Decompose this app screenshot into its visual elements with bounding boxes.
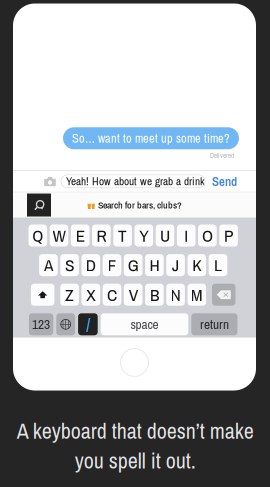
staticText: /: [86, 312, 90, 337]
staticText: Search for bars, clubs?: [98, 198, 182, 212]
button[interactable]: Delete: [212, 284, 235, 306]
button[interactable]: M: [187, 284, 206, 306]
staticText: R: [96, 224, 106, 247]
button[interactable]: O: [198, 224, 217, 246]
staticText: return: [200, 315, 229, 333]
staticText: Delivered: [210, 151, 234, 160]
staticText: O: [202, 224, 213, 247]
staticText: So… want to meet up some time?: [72, 130, 230, 146]
button[interactable]: U: [156, 224, 174, 246]
staticText: C: [107, 283, 117, 306]
button[interactable]: R: [92, 224, 111, 246]
staticText: M: [191, 283, 203, 306]
button[interactable]: Z: [60, 284, 79, 306]
button[interactable]: Switch keyboard: [56, 313, 75, 335]
button[interactable]: 123: [29, 313, 53, 335]
staticText: J: [172, 253, 179, 277]
staticText: I: [184, 224, 188, 247]
staticText: P: [224, 224, 233, 247]
button[interactable]: A: [39, 254, 58, 276]
button[interactable]: T: [113, 224, 132, 246]
staticText: 123: [32, 315, 50, 333]
button[interactable]: return: [191, 313, 237, 335]
button[interactable]: X: [81, 284, 100, 306]
button[interactable]: Q: [28, 224, 47, 246]
button[interactable]: J: [166, 254, 185, 276]
staticText: F: [107, 253, 116, 277]
staticText: V: [129, 283, 138, 306]
staticText: Z: [65, 283, 74, 306]
button[interactable]: V: [124, 284, 142, 306]
button[interactable]: Shift: [31, 284, 54, 306]
staticText: A keyboard that doesn’t make you spell i…: [16, 416, 253, 475]
button[interactable]: E: [71, 224, 89, 246]
staticText: D: [86, 253, 96, 277]
button[interactable]: Y: [134, 224, 153, 246]
staticText: L: [214, 253, 222, 277]
staticText: K: [192, 253, 201, 277]
button[interactable]: Scout search: [27, 193, 51, 216]
button[interactable]: D: [81, 254, 100, 276]
button[interactable]: K: [187, 254, 206, 276]
staticText: H: [149, 253, 159, 277]
button[interactable]: C: [103, 284, 121, 306]
button[interactable]: G: [124, 254, 142, 276]
staticText: G: [128, 253, 139, 277]
button[interactable]: Send: [209, 173, 240, 190]
button[interactable]: N: [166, 284, 185, 306]
staticText: A: [44, 253, 53, 277]
button[interactable]: I: [177, 224, 195, 246]
staticText: W: [52, 224, 65, 247]
button[interactable]: Scout keyboard: [78, 313, 98, 335]
button[interactable]: S: [60, 254, 79, 276]
staticText: Send: [212, 173, 237, 190]
button[interactable]: B: [145, 284, 164, 306]
staticText: Q: [32, 224, 43, 247]
staticText: T: [118, 224, 127, 247]
button[interactable]: W: [50, 224, 68, 246]
staticText: X: [86, 283, 95, 306]
staticText: N: [171, 283, 181, 306]
button[interactable]: P: [219, 224, 238, 246]
staticText: Yeah! How about we grab a drink: [66, 174, 205, 189]
button[interactable]: space: [101, 313, 188, 335]
staticText: space: [130, 315, 158, 333]
button[interactable]: L: [209, 254, 227, 276]
staticText: B: [150, 283, 159, 306]
staticText: U: [160, 224, 170, 247]
button[interactable]: F: [103, 254, 121, 276]
staticText: Y: [139, 224, 148, 247]
button[interactable]: H: [145, 254, 164, 276]
button[interactable]: Camera: [39, 171, 61, 192]
staticText: S: [65, 253, 74, 277]
staticText: E: [76, 224, 85, 247]
